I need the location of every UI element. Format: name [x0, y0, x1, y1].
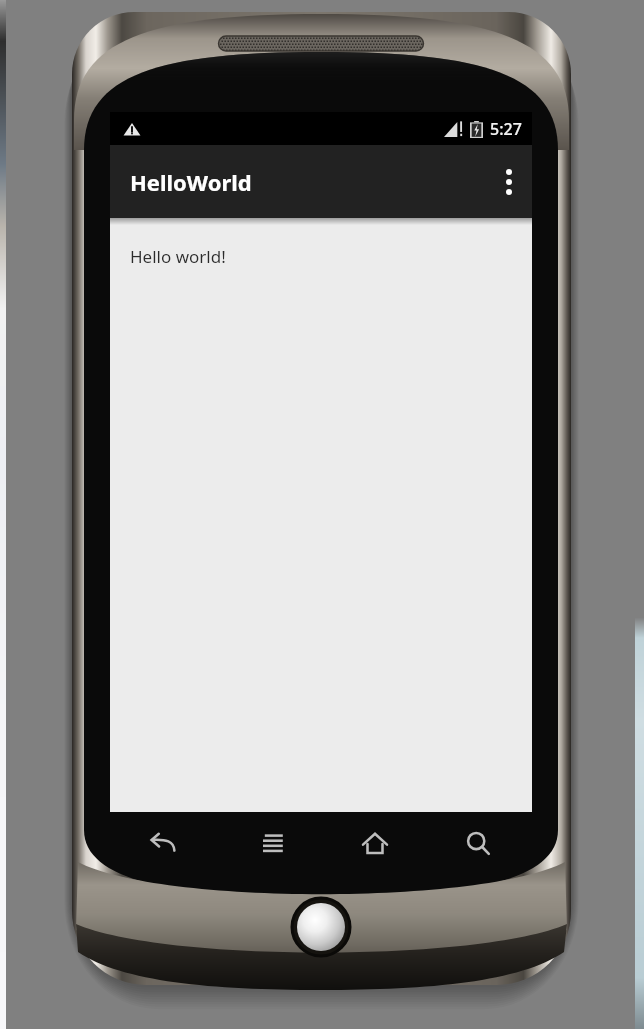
button[interactable]: Home [345, 818, 405, 870]
staticText: 5:27 [490, 118, 522, 140]
button[interactable]: Search [448, 818, 508, 870]
button[interactable]: More options [486, 145, 532, 218]
staticText: HelloWorld [130, 167, 252, 197]
staticText: Hello world! [130, 245, 226, 268]
button[interactable]: Menu [242, 818, 302, 870]
button[interactable]: Back [133, 818, 193, 870]
